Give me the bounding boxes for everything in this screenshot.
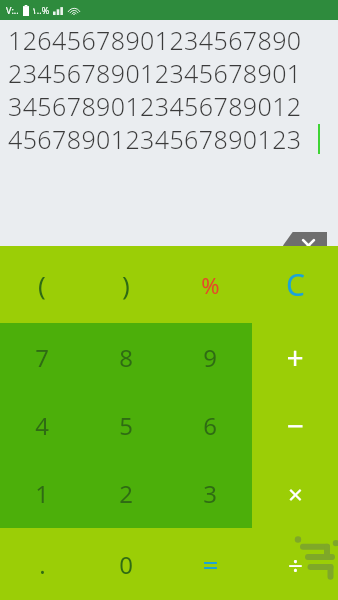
button[interactable]: . bbox=[0, 528, 84, 600]
staticText: 4 bbox=[35, 409, 49, 442]
staticText: = bbox=[202, 545, 219, 583]
button[interactable]: 7 bbox=[0, 323, 84, 391]
button[interactable]: 2 bbox=[84, 459, 168, 528]
staticText: ١..% bbox=[32, 4, 50, 16]
staticText: % bbox=[201, 270, 220, 300]
staticText: 12645678901234567890 bbox=[8, 23, 302, 56]
staticText: ÷ bbox=[288, 547, 303, 582]
button[interactable]: 4 bbox=[0, 391, 84, 459]
button[interactable]: + bbox=[252, 323, 338, 391]
button[interactable]: = bbox=[168, 528, 252, 600]
button[interactable]: 6 bbox=[168, 391, 252, 459]
staticText: ( bbox=[38, 267, 46, 302]
staticText: 6 bbox=[203, 409, 217, 442]
button[interactable]: 3 bbox=[168, 459, 252, 528]
button[interactable]: 9 bbox=[168, 323, 252, 391]
button[interactable]: ÷ bbox=[252, 528, 338, 600]
staticText: 8 bbox=[119, 341, 133, 374]
button[interactable]: 5 bbox=[84, 391, 168, 459]
staticText: × bbox=[288, 476, 303, 511]
staticText: 5 bbox=[119, 409, 133, 442]
staticText: V:.. bbox=[6, 4, 19, 16]
staticText: 0 bbox=[119, 548, 133, 581]
staticText: . bbox=[39, 548, 46, 581]
staticText: 3 bbox=[203, 477, 217, 510]
staticText: 2 bbox=[119, 477, 133, 510]
button[interactable]: Backspace bbox=[283, 232, 327, 259]
staticText: ) bbox=[122, 267, 130, 302]
staticText: C bbox=[286, 264, 305, 305]
staticText: 9 bbox=[203, 341, 217, 374]
button[interactable]: % bbox=[168, 246, 252, 323]
button[interactable]: 1 bbox=[0, 459, 84, 528]
button[interactable]: C bbox=[252, 246, 338, 323]
button[interactable]: × bbox=[252, 459, 338, 528]
button[interactable]: ( bbox=[0, 246, 84, 323]
button[interactable]: 0 bbox=[84, 528, 168, 600]
staticText: 7 bbox=[35, 341, 49, 374]
button[interactable]: 8 bbox=[84, 323, 168, 391]
staticText: + bbox=[286, 337, 304, 378]
staticText: 34567890123456789012 bbox=[8, 89, 302, 122]
staticText: 45678901234567890123 bbox=[8, 122, 302, 155]
staticText: 1 bbox=[35, 477, 49, 510]
button[interactable]: ) bbox=[84, 246, 168, 323]
staticText: 23456789012345678901 bbox=[8, 56, 302, 89]
staticText: − bbox=[286, 405, 304, 446]
button[interactable]: − bbox=[252, 391, 338, 459]
